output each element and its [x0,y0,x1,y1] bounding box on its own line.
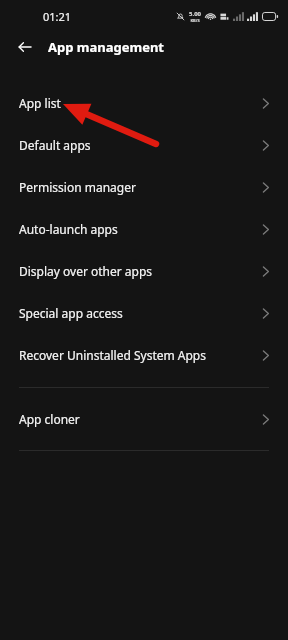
staticText: App list [19,95,262,111]
button[interactable]: Back [11,33,39,61]
staticText: 5.00 [189,10,201,18]
button[interactable]: Auto-launch apps [0,208,288,250]
staticText: Default apps [19,137,262,153]
button[interactable]: App cloner [0,398,288,440]
staticText: Display over other apps [19,263,262,279]
button[interactable]: Display over other apps [0,250,288,292]
staticText: App cloner [19,411,262,427]
staticText: Special app access [19,305,262,321]
button[interactable]: Special app access [0,292,288,334]
button[interactable]: Permission manager [0,166,288,208]
staticText: App management [48,38,165,56]
staticText: Recover Uninstalled System Apps [19,347,262,363]
staticText: Permission manager [19,179,262,195]
staticText: 01:21 [43,9,72,24]
staticText: Auto-launch apps [19,221,262,237]
staticText: KB/S [190,18,200,23]
button[interactable]: Recover Uninstalled System Apps [0,334,288,376]
button[interactable]: Default apps [0,124,288,166]
button[interactable]: App list [0,82,288,124]
